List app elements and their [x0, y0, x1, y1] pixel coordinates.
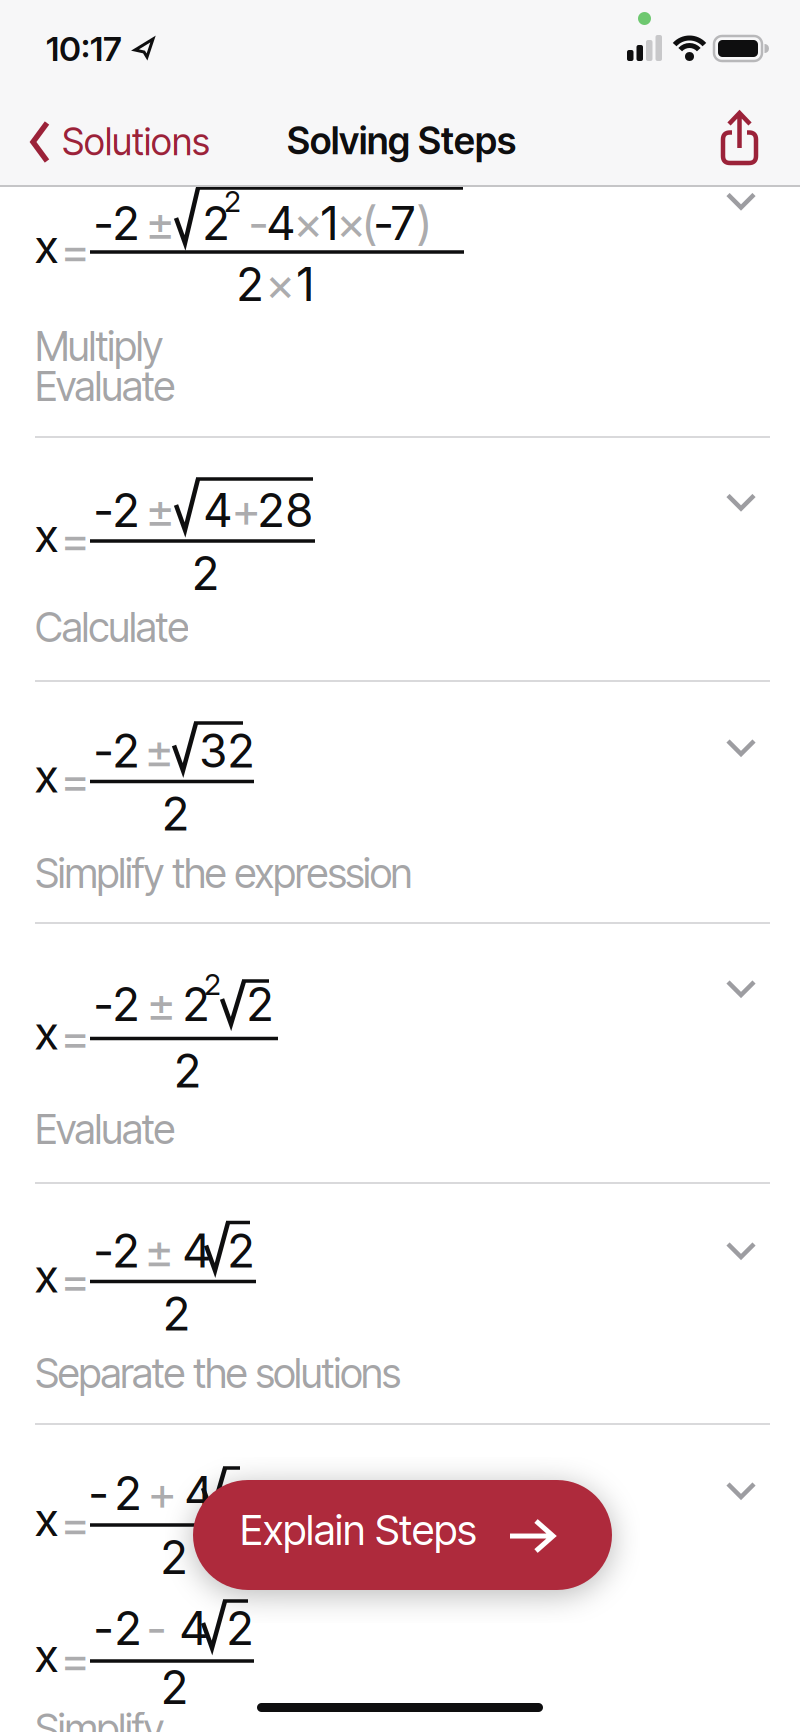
staticText: 10:17 [46, 28, 122, 69]
button[interactable]: Expand step [0, 0, 800, 1732]
button[interactable]: Expand step [0, 0, 800, 1732]
staticText: 2 [182, 976, 210, 1032]
staticText: 2 [224, 184, 241, 219]
staticText: Calculate [35, 602, 189, 652]
staticText: × [265, 256, 295, 312]
staticText: = [60, 512, 90, 568]
staticText: 2 [161, 786, 189, 842]
staticText: 2 [226, 1600, 254, 1656]
button[interactable]: Back to Solutions [0, 0, 800, 1732]
staticText: ± [145, 482, 175, 538]
staticText: 2 [204, 967, 221, 1002]
staticText: Evaluate [35, 1104, 176, 1154]
staticText: 1 [296, 256, 315, 312]
staticText: - [88, 1465, 109, 1521]
staticText: 4 [182, 1223, 212, 1279]
staticText: - [248, 195, 269, 251]
staticText: 2 [112, 723, 140, 779]
staticText: x [34, 218, 59, 274]
staticText: 1 [320, 195, 339, 251]
staticText: = [60, 752, 90, 808]
staticText: = [60, 1009, 90, 1065]
staticText: x [34, 1248, 59, 1304]
staticText: = [60, 1632, 90, 1688]
staticText: ± [144, 723, 174, 779]
staticText: Simplify the expression [35, 848, 413, 898]
staticText: x [34, 507, 59, 563]
staticText: ± [145, 195, 175, 251]
staticText: - [93, 1223, 114, 1279]
staticText: ± [146, 976, 176, 1032]
staticText: Evaluate [35, 361, 176, 411]
button[interactable]: Expand step [0, 0, 800, 1732]
staticText: 2 [112, 195, 140, 251]
staticText: × [293, 195, 323, 251]
staticText: - [93, 976, 114, 1032]
staticText: 4 [179, 1600, 209, 1656]
staticText: Explain Steps [240, 1505, 477, 1555]
staticText: 2 [236, 256, 264, 312]
staticText: = [60, 223, 90, 279]
staticText: 2 [112, 1223, 140, 1279]
staticText: = [60, 1496, 90, 1552]
staticText: Simplify [35, 1704, 165, 1732]
staticText: - [146, 1600, 167, 1656]
staticText: Solutions [62, 119, 210, 164]
staticText: x [34, 1005, 59, 1061]
staticText: 2 [160, 1659, 188, 1715]
staticText: 2 [162, 1286, 190, 1342]
staticText: × [336, 195, 366, 251]
staticText: x [34, 1491, 59, 1547]
staticText: Separate the solutions [35, 1348, 401, 1398]
staticText: 2 [112, 976, 140, 1032]
staticText: x [34, 748, 59, 804]
staticText: 2 [191, 545, 219, 601]
staticText: 2 [114, 1600, 142, 1656]
staticText: 4 [203, 482, 233, 538]
staticText: = [60, 1252, 90, 1308]
staticText: 4 [266, 195, 296, 251]
staticText: 2 [160, 1529, 188, 1585]
staticText: - [373, 195, 394, 251]
staticText: 7 [390, 195, 416, 251]
staticText: 2 [112, 482, 140, 538]
staticText: Multiply [35, 321, 164, 371]
staticText: 4 [184, 1465, 214, 1521]
staticText: - [93, 195, 114, 251]
staticText: 32 [199, 723, 255, 779]
button[interactable]: Expand step [0, 0, 800, 1732]
staticText: x [34, 1627, 59, 1683]
staticText: 2 [227, 1223, 255, 1279]
button[interactable]: Expand step [0, 0, 800, 1732]
button[interactable]: Expand step [0, 0, 800, 1732]
staticText: - [93, 1600, 114, 1656]
staticText: Solving Steps [287, 118, 516, 163]
staticText: 2 [246, 976, 274, 1032]
staticText: 2 [173, 1043, 201, 1099]
staticText: 28 [257, 482, 313, 538]
staticText: - [93, 482, 114, 538]
staticText: 2 [202, 195, 230, 251]
button[interactable]: Share [0, 0, 800, 1732]
button[interactable]: Explain Steps [193, 1480, 612, 1590]
staticText: ( [361, 195, 378, 251]
staticText: + [147, 1465, 177, 1521]
staticText: - [93, 723, 114, 779]
staticText: 2 [114, 1465, 142, 1521]
staticText: + [231, 482, 261, 538]
staticText: ) [416, 195, 433, 251]
staticText: ± [144, 1223, 174, 1279]
